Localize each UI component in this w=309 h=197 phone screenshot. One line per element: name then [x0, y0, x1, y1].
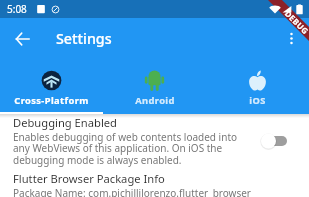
button[interactable]: iOS: [206, 59, 309, 114]
button[interactable]: Toggle debugging enabled: [257, 131, 287, 151]
staticText: 5:08: [7, 2, 27, 16]
button[interactable]: More options: [273, 18, 309, 59]
staticText: iOS: [249, 94, 266, 107]
button[interactable]: Flutter Browser Package Info: [0, 170, 309, 197]
staticText: Debugging Enabled: [13, 115, 117, 130]
staticText: Settings: [56, 29, 112, 48]
button[interactable]: Back: [0, 18, 44, 59]
button[interactable]: Android: [103, 59, 206, 114]
staticText: Package Name: com.pichillilorenzo.flutte…: [13, 186, 251, 197]
button[interactable]: Cross-Platform: [0, 59, 103, 114]
staticText: Enables debugging of web contents loaded…: [13, 130, 245, 167]
button[interactable]: Debugging Enabled: [0, 114, 309, 170]
staticText: Flutter Browser Package Info: [13, 171, 165, 186]
staticText: Cross-Platform: [14, 94, 89, 107]
staticText: Android: [135, 94, 175, 107]
